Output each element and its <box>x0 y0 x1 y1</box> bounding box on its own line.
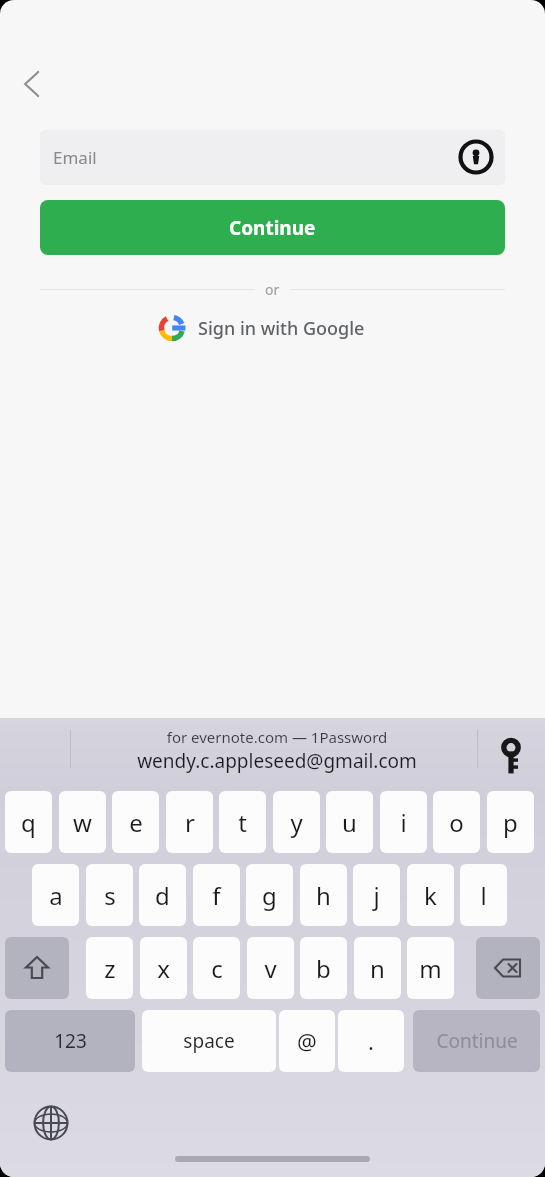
button[interactable]: t <box>219 791 266 853</box>
staticText: a <box>49 879 63 912</box>
staticText: . <box>368 1026 374 1056</box>
staticText: space <box>183 1028 235 1054</box>
button[interactable]: j <box>353 864 400 926</box>
staticText: l <box>480 879 487 912</box>
button[interactable]: u <box>326 791 373 853</box>
staticText: r <box>185 806 195 839</box>
button[interactable]: f <box>193 864 240 926</box>
button[interactable]: Continue <box>413 1010 540 1072</box>
button[interactable]: d <box>139 864 186 926</box>
staticText: wendy.c.appleseed@gmail.com <box>78 748 476 774</box>
staticText: Email <box>53 146 97 169</box>
staticText: i <box>400 806 407 839</box>
button[interactable]: l <box>460 864 507 926</box>
staticText: e <box>129 806 143 839</box>
button[interactable]: h <box>300 864 347 926</box>
staticText: z <box>104 952 116 985</box>
button[interactable]: . <box>338 1010 404 1072</box>
staticText: n <box>370 952 385 985</box>
button[interactable]: @ <box>279 1010 335 1072</box>
staticText: Continue <box>436 1028 518 1054</box>
staticText: @ <box>297 1026 317 1056</box>
button[interactable]: Continue <box>40 200 505 255</box>
button[interactable]: b <box>300 937 347 999</box>
staticText: for evernote.com — 1Password <box>78 727 476 749</box>
button[interactable]: n <box>354 937 401 999</box>
staticText: j <box>373 879 380 912</box>
button[interactable]: v <box>247 937 294 999</box>
staticText: or <box>265 280 280 299</box>
button[interactable]: c <box>193 937 240 999</box>
button[interactable]: Shift <box>5 937 69 999</box>
staticText: b <box>316 952 331 985</box>
staticText: v <box>264 952 277 985</box>
button[interactable]: Email <box>40 130 505 185</box>
staticText: y <box>290 806 303 839</box>
button[interactable]: k <box>407 864 454 926</box>
button[interactable]: m <box>407 937 454 999</box>
button[interactable]: y <box>273 791 320 853</box>
button[interactable]: e <box>112 791 159 853</box>
button[interactable]: i <box>380 791 427 853</box>
staticText: t <box>238 806 247 839</box>
button[interactable]: Passwords <box>490 732 532 774</box>
button[interactable]: s <box>86 864 133 926</box>
button[interactable]: for evernote.com — 1Password <box>0 718 545 780</box>
button[interactable]: a <box>32 864 79 926</box>
staticText: m <box>419 952 442 985</box>
staticText: k <box>424 879 437 912</box>
button[interactable]: p <box>487 791 534 853</box>
button[interactable]: r <box>166 791 213 853</box>
staticText: d <box>155 879 170 912</box>
button[interactable]: w <box>59 791 106 853</box>
button[interactable]: q <box>5 791 52 853</box>
button[interactable]: z <box>86 937 133 999</box>
button[interactable]: x <box>140 937 187 999</box>
staticText: Sign in with Google <box>198 316 365 341</box>
button[interactable]: g <box>246 864 293 926</box>
staticText: p <box>503 806 518 839</box>
button[interactable]: Change keyboard language <box>30 1102 72 1144</box>
staticText: s <box>104 879 116 912</box>
staticText: h <box>316 879 331 912</box>
staticText: c <box>211 952 223 985</box>
staticText: u <box>342 806 357 839</box>
button[interactable]: 1Password autofill <box>455 136 497 178</box>
staticText: x <box>157 952 170 985</box>
button[interactable]: Sign in with Google <box>150 308 395 348</box>
button[interactable]: Backspace <box>476 937 540 999</box>
button[interactable]: o <box>433 791 480 853</box>
button[interactable]: Back <box>14 62 58 106</box>
staticText: o <box>449 806 464 839</box>
staticText: g <box>262 879 277 912</box>
staticText: Continue <box>229 215 316 241</box>
staticText: w <box>73 806 92 839</box>
staticText: 123 <box>54 1028 87 1054</box>
button[interactable]: 123 <box>5 1010 135 1072</box>
button[interactable]: space <box>142 1010 276 1072</box>
staticText: f <box>212 879 221 912</box>
staticText: q <box>21 806 36 839</box>
